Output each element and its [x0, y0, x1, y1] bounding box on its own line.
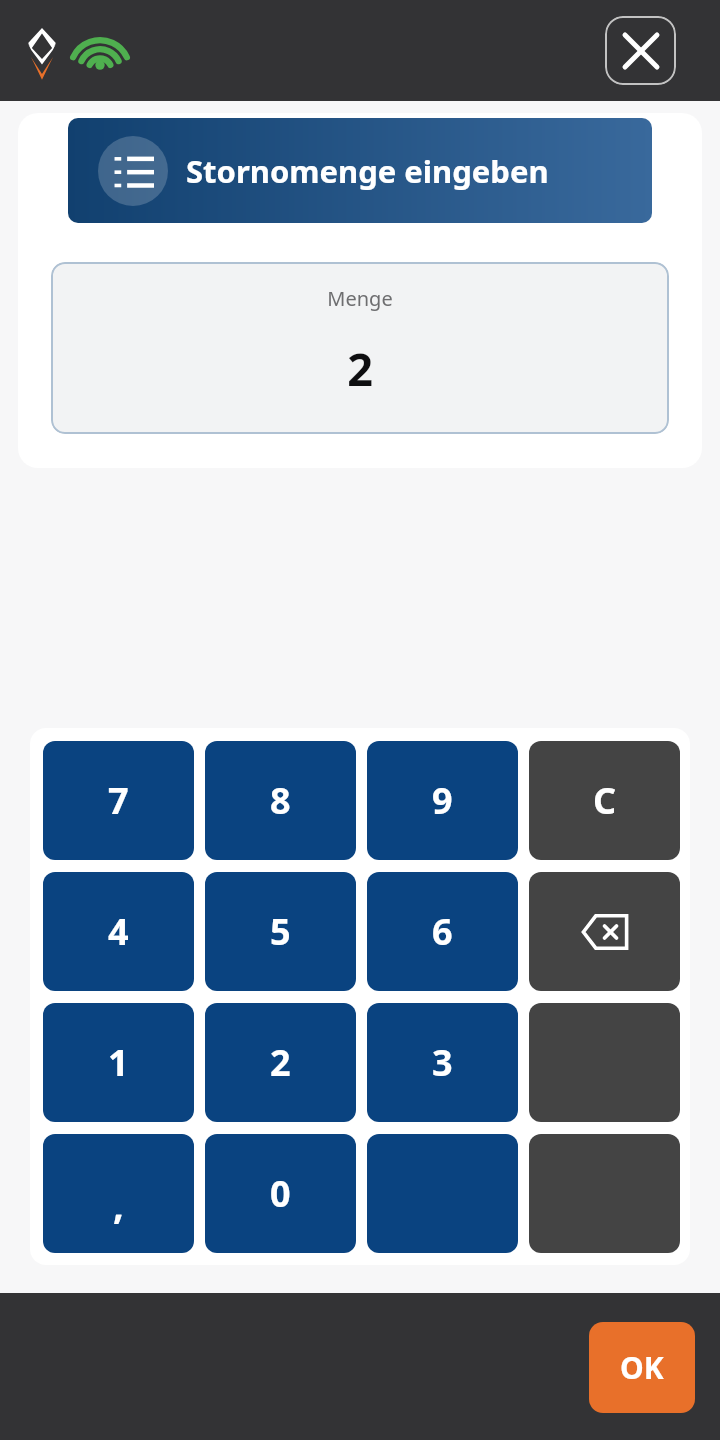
button[interactable]: 1: [43, 1003, 194, 1122]
staticText: 8: [270, 776, 291, 825]
staticText: 4: [108, 907, 129, 956]
button[interactable]: [529, 1134, 680, 1253]
button[interactable]: [529, 1003, 680, 1122]
staticText: Stornomenge eingeben: [186, 150, 549, 192]
button[interactable]: ,: [43, 1134, 194, 1253]
staticText: 5: [270, 907, 291, 956]
staticText: 7: [108, 776, 129, 825]
button[interactable]: 6: [367, 872, 518, 991]
button[interactable]: 0: [205, 1134, 356, 1253]
button[interactable]: OK: [589, 1322, 695, 1413]
staticText: Menge: [51, 285, 669, 312]
button[interactable]: 8: [205, 741, 356, 860]
staticText: 2: [270, 1038, 291, 1087]
staticText: 3: [432, 1038, 453, 1087]
button[interactable]: [367, 1134, 518, 1253]
button[interactable]: 3: [367, 1003, 518, 1122]
button[interactable]: Backspace: [529, 872, 680, 991]
staticText: 1: [108, 1038, 129, 1087]
button[interactable]: 7: [43, 741, 194, 860]
button[interactable]: 9: [367, 741, 518, 860]
button[interactable]: 2: [205, 1003, 356, 1122]
button[interactable]: C: [529, 741, 680, 860]
staticText: C: [593, 776, 617, 825]
button[interactable]: Menge: [51, 262, 669, 434]
staticText: OK: [620, 1347, 664, 1388]
staticText: 6: [432, 907, 453, 956]
button[interactable]: Stornomenge eingeben: [68, 118, 652, 223]
staticText: ,: [113, 1178, 124, 1230]
staticText: 0: [270, 1169, 291, 1218]
button[interactable]: Close: [605, 16, 676, 85]
staticText: 2: [51, 338, 669, 399]
button[interactable]: 5: [205, 872, 356, 991]
button[interactable]: 4: [43, 872, 194, 991]
staticText: 9: [432, 776, 453, 825]
